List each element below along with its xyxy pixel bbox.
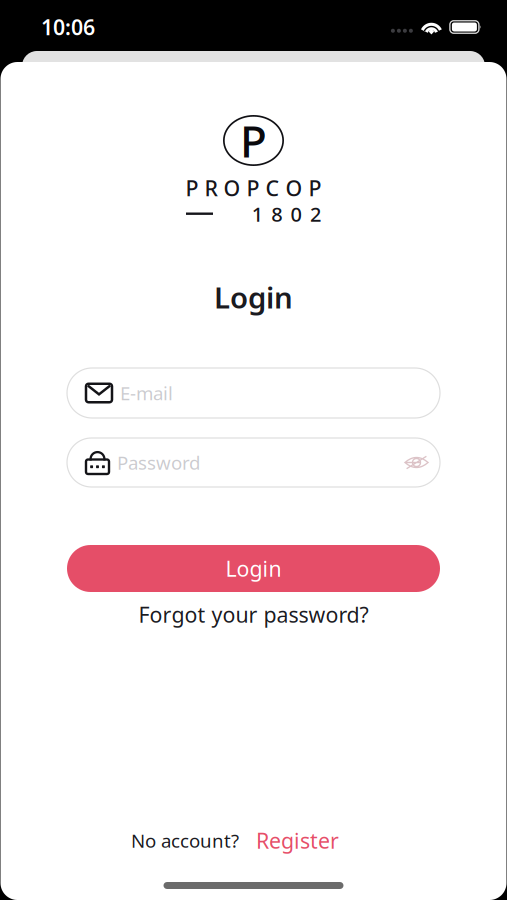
staticText: R xyxy=(204,174,217,202)
staticText: O xyxy=(223,174,240,202)
button[interactable]: Show password xyxy=(400,446,433,479)
staticText: 1 xyxy=(252,201,263,227)
staticText: P xyxy=(240,111,267,170)
staticText: Login xyxy=(214,277,293,316)
staticText: Login xyxy=(225,554,281,583)
button[interactable]: Register xyxy=(256,826,339,855)
staticText: 2 xyxy=(310,201,321,227)
staticText: Password xyxy=(117,450,200,475)
staticText: Forgot your password? xyxy=(138,600,368,629)
staticText: C xyxy=(265,174,279,202)
staticText: O xyxy=(285,174,302,202)
staticText: E-mail xyxy=(120,381,173,405)
staticText: P xyxy=(185,174,198,202)
staticText: No account? xyxy=(131,828,239,853)
staticText: 8 xyxy=(271,201,282,227)
staticText: P xyxy=(308,174,321,202)
button[interactable]: Login xyxy=(67,545,440,592)
button[interactable]: Forgot your password? xyxy=(67,601,440,628)
staticText: P xyxy=(246,174,259,202)
staticText: Register xyxy=(256,826,339,855)
staticText: 0 xyxy=(291,201,302,227)
staticText: 10:06 xyxy=(41,13,95,41)
